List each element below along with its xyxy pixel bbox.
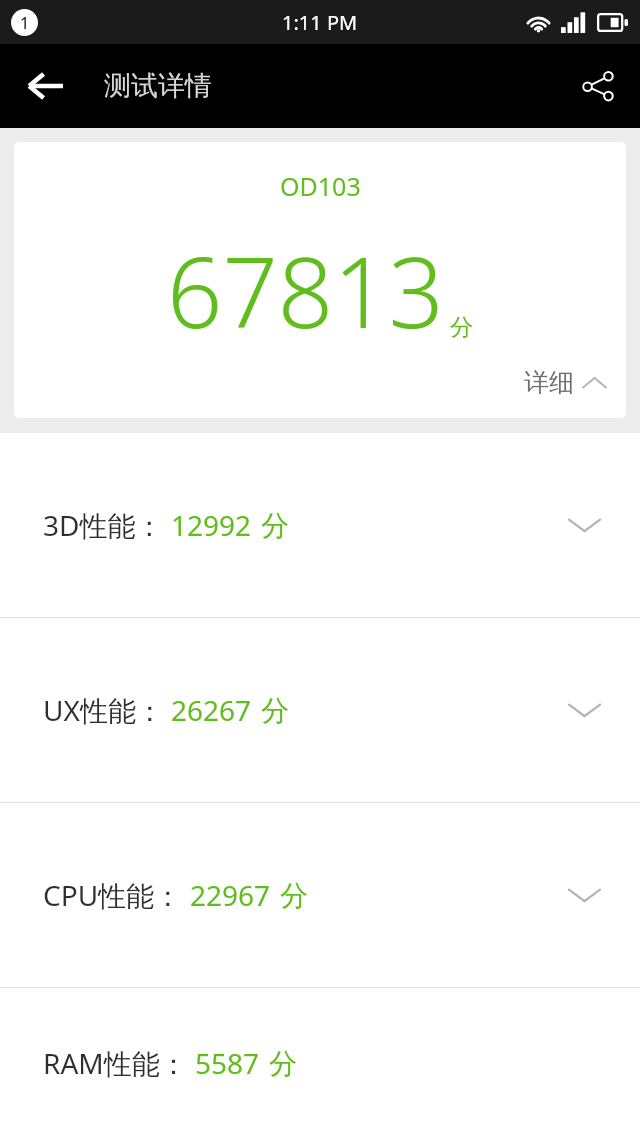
button[interactable]: CPU性能： [0,803,640,987]
staticText: UX性能： [43,691,164,729]
button[interactable]: 3D性能： [0,433,640,617]
staticText: 1 [20,12,30,34]
button[interactable]: 详细 [524,367,606,398]
staticText: OD103 [280,169,361,203]
button[interactable]: UX性能： [0,618,640,802]
staticText: 分 [450,313,473,342]
staticText: 3D性能： [43,506,164,544]
staticText: 22967 [190,876,271,914]
button[interactable]: Share [566,54,630,118]
button[interactable]: Back [13,54,77,118]
staticText: 详细 [524,367,574,398]
staticText: 分 [261,693,289,728]
staticText: 12992 [171,506,252,544]
staticText: 26267 [171,691,252,729]
staticText: 测试详情 [104,69,212,103]
staticText: 1:11 PM [282,9,358,36]
button[interactable]: OD103 [14,142,626,418]
staticText: CPU性能： [43,876,183,914]
staticText: 67813 [167,224,444,356]
staticText: 分 [280,878,308,913]
staticText: 分 [261,508,289,543]
button[interactable]: RAM性能： [0,988,640,1138]
staticText: 分 [269,1046,297,1081]
staticText: RAM性能： [43,1044,188,1082]
staticText: 5587 [195,1044,260,1082]
